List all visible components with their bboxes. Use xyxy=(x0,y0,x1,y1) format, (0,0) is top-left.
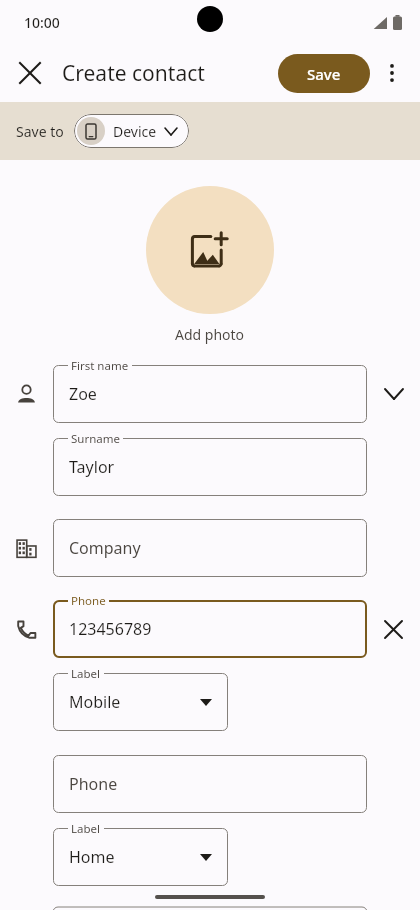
button[interactable]: Add photo xyxy=(146,186,274,314)
button[interactable]: Phone xyxy=(53,600,367,658)
staticText: Create contact xyxy=(62,59,205,88)
staticText: Phone xyxy=(69,773,118,795)
button[interactable]: Close xyxy=(8,51,52,95)
staticText: Mobile xyxy=(69,691,121,713)
button[interactable]: Phone xyxy=(53,755,367,813)
staticText: Label xyxy=(71,821,101,837)
staticText: Device xyxy=(113,122,157,141)
button[interactable]: Save xyxy=(278,54,370,93)
staticText: First name xyxy=(71,358,129,374)
staticText: 123456789 xyxy=(69,618,152,640)
button[interactable]: Label xyxy=(53,828,228,886)
button[interactable]: First name xyxy=(53,365,367,423)
staticText: Save to xyxy=(16,122,64,141)
button[interactable]: Label xyxy=(53,673,228,731)
button[interactable]: Company xyxy=(53,519,367,577)
button[interactable]: Device xyxy=(74,114,189,148)
staticText: 10:00 xyxy=(24,13,60,32)
staticText: Surname xyxy=(71,431,120,447)
staticText: Home xyxy=(69,846,115,868)
staticText: Zoe xyxy=(69,383,97,405)
button[interactable]: Clear phone xyxy=(367,600,420,658)
staticText: Add photo xyxy=(175,325,245,344)
staticText: Save xyxy=(307,64,341,84)
staticText: Taylor xyxy=(69,456,115,478)
button[interactable]: Surname xyxy=(53,438,367,496)
staticText: Label xyxy=(71,666,101,682)
button[interactable] xyxy=(53,907,367,910)
staticText: Phone xyxy=(71,593,106,609)
button[interactable]: More options xyxy=(370,51,414,95)
button[interactable]: Expand name fields xyxy=(367,365,420,423)
staticText: Company xyxy=(69,537,141,559)
